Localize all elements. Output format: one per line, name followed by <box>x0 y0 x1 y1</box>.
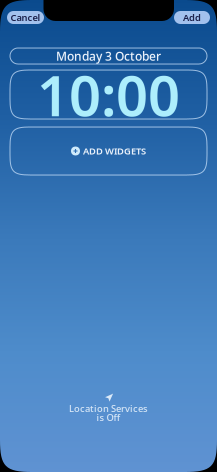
button[interactable]: ADD WIDGETS <box>10 127 207 175</box>
button[interactable]: Add <box>174 11 210 24</box>
staticText: Add <box>183 11 201 24</box>
staticText: Monday 3 October <box>56 48 161 64</box>
staticText: ADD WIDGETS <box>83 145 146 157</box>
button[interactable]: Cancel <box>7 11 44 24</box>
staticText: Location Services <box>69 402 148 415</box>
staticText: is Off <box>96 411 120 424</box>
button[interactable]: 10:00 <box>10 70 207 119</box>
staticText: Cancel <box>10 11 40 24</box>
button[interactable]: Monday 3 October <box>10 48 207 64</box>
staticText: 10:00 <box>37 57 180 132</box>
